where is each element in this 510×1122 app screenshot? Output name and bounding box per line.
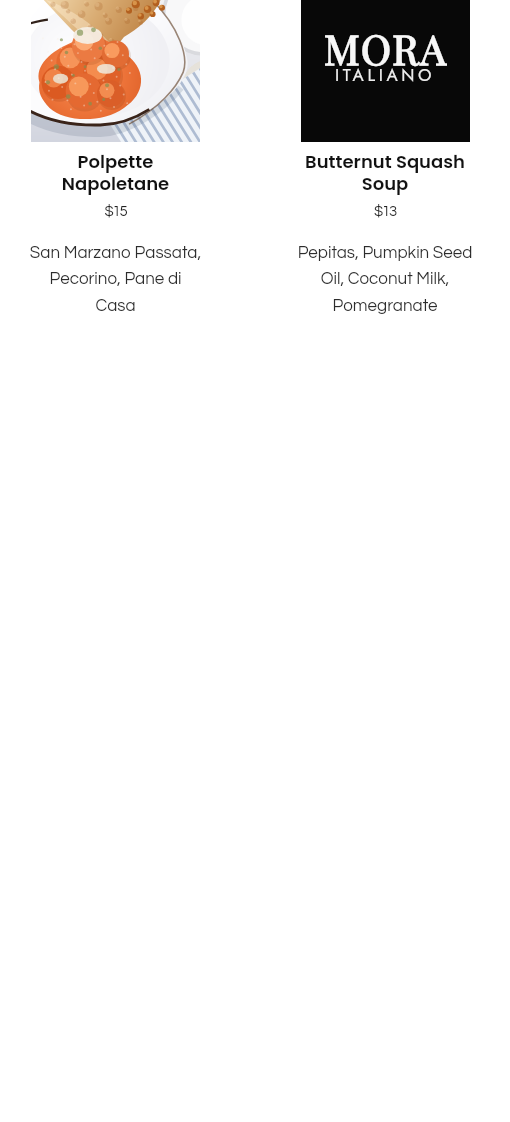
staticText: MORA: [324, 21, 448, 76]
staticText: Pepitas, Pumpkin Seed Oil, Coconut Milk,…: [285, 244, 485, 315]
staticText: $15: [16, 204, 215, 219]
staticText: Polpette Napoletane: [16, 149, 215, 196]
button[interactable]: Polpette Napoletane: [16, 0, 215, 315]
staticText: San Marzano Passata, Pecorino, Pane di C…: [16, 244, 215, 315]
staticText: ITALIANO: [335, 63, 436, 88]
button[interactable]: MORA: [285, 0, 485, 315]
staticText: $13: [285, 204, 485, 219]
staticText: Butternut Squash Soup: [285, 149, 485, 196]
